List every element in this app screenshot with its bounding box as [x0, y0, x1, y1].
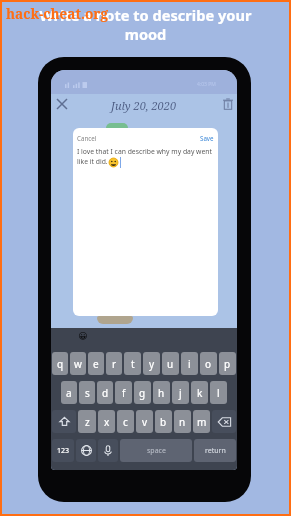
- staticText: v: [142, 415, 148, 429]
- button[interactable]: Change language: [76, 439, 96, 462]
- button[interactable]: p: [219, 352, 236, 375]
- staticText: f: [122, 386, 126, 400]
- button[interactable]: Shift: [52, 410, 76, 433]
- button[interactable]: o: [200, 352, 217, 375]
- staticText: h: [158, 386, 165, 400]
- button[interactable]: x: [98, 410, 115, 433]
- staticText: u: [167, 357, 174, 371]
- staticText: q: [57, 357, 64, 371]
- staticText: e: [93, 357, 99, 371]
- staticText: s: [85, 386, 90, 400]
- button[interactable]: t: [124, 352, 141, 375]
- button[interactable]: h: [153, 381, 170, 404]
- staticText: i: [188, 357, 191, 371]
- staticText: j: [179, 386, 182, 400]
- staticText: July 20, 2020: [111, 98, 177, 113]
- staticText: r: [112, 357, 117, 371]
- staticText: g: [139, 386, 146, 400]
- button[interactable]: b: [155, 410, 172, 433]
- staticText: space: [147, 446, 166, 456]
- staticText: x: [104, 415, 110, 429]
- staticText: b: [160, 415, 167, 429]
- button[interactable]: l: [210, 381, 227, 404]
- button[interactable]: Backspace: [212, 410, 236, 433]
- button[interactable]: j: [172, 381, 189, 404]
- staticText: m: [197, 415, 207, 429]
- button[interactable]: k: [191, 381, 208, 404]
- button[interactable]: m: [193, 410, 210, 433]
- staticText: l: [217, 386, 220, 400]
- staticText: 4:03 PM: [197, 81, 216, 88]
- button[interactable]: w: [70, 352, 86, 375]
- button[interactable]: n: [174, 410, 191, 433]
- button[interactable]: q: [52, 352, 68, 375]
- button[interactable]: c: [117, 410, 134, 433]
- button[interactable]: d: [97, 381, 113, 404]
- staticText: w: [74, 357, 82, 371]
- button[interactable]: a: [61, 381, 77, 404]
- button[interactable]: space: [120, 439, 192, 462]
- button[interactable]: g: [134, 381, 151, 404]
- staticText: I love that I can describe why my day we…: [77, 147, 212, 166]
- staticText: d: [102, 386, 109, 400]
- button[interactable]: y: [143, 352, 160, 375]
- staticText: t: [131, 357, 135, 371]
- button[interactable]: f: [115, 381, 132, 404]
- button[interactable]: Close: [53, 95, 70, 112]
- staticText: 123: [57, 446, 70, 456]
- button[interactable]: s: [79, 381, 95, 404]
- staticText: a: [66, 386, 72, 400]
- button[interactable]: Numbers: [52, 439, 74, 462]
- button[interactable]: Cancel: [77, 134, 97, 142]
- staticText: n: [179, 415, 186, 429]
- button[interactable]: z: [78, 410, 96, 433]
- staticText: o: [205, 357, 212, 371]
- button[interactable]: i: [181, 352, 198, 375]
- staticText: return: [205, 446, 226, 456]
- button[interactable]: u: [162, 352, 179, 375]
- staticText: c: [123, 415, 128, 429]
- button[interactable]: Delete: [219, 95, 237, 113]
- staticText: p: [224, 357, 231, 371]
- staticText: k: [197, 386, 203, 400]
- button[interactable]: v: [136, 410, 153, 433]
- staticText: y: [149, 357, 155, 371]
- staticText: Write a note to describe your mood: [2, 5, 289, 44]
- button[interactable]: r: [106, 352, 122, 375]
- button[interactable]: e: [88, 352, 104, 375]
- staticText: hack-cheat.org: [6, 4, 108, 23]
- button[interactable]: Voice input: [98, 439, 118, 462]
- staticText: z: [85, 415, 90, 429]
- staticText: 😀: [78, 331, 88, 341]
- button[interactable]: Save: [200, 134, 214, 142]
- button[interactable]: return: [194, 439, 236, 462]
